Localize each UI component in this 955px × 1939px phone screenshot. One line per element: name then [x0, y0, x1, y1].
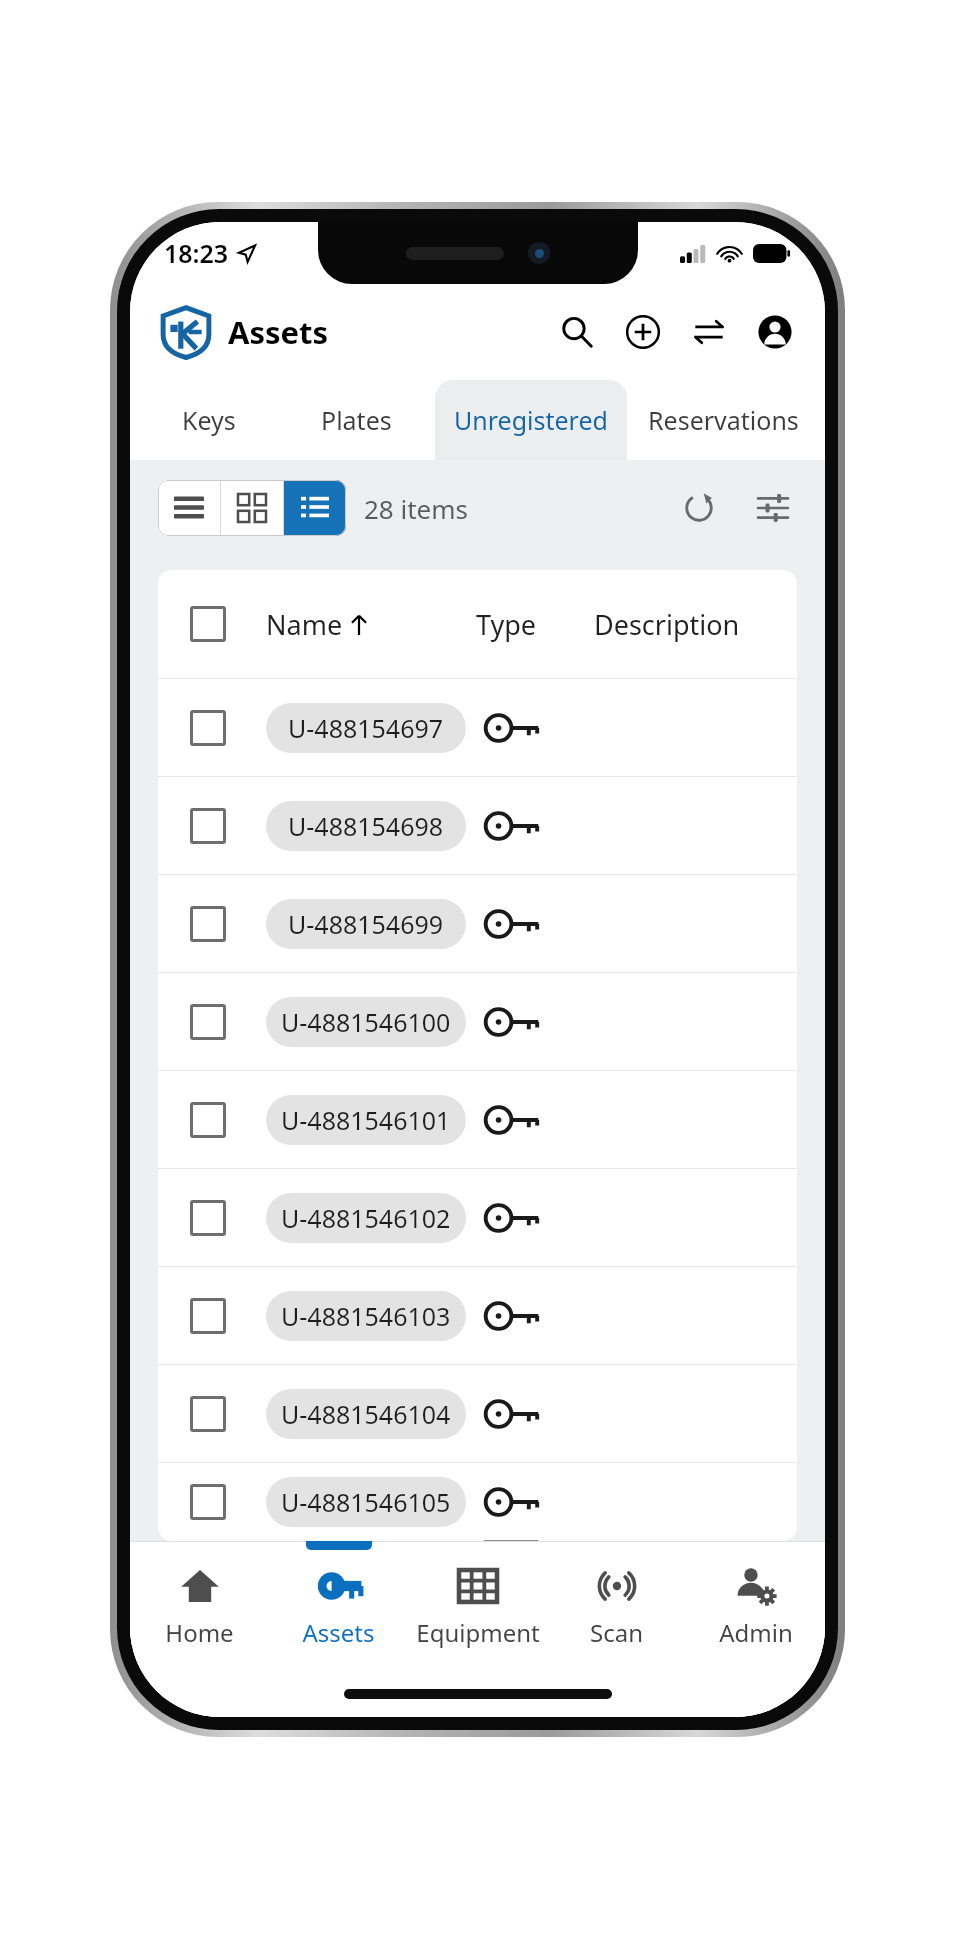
button[interactable]: Select — [188, 679, 797, 776]
staticText: Plates — [321, 403, 392, 437]
staticText: Type — [476, 606, 594, 643]
button[interactable]: Select — [188, 806, 228, 846]
button[interactable]: Select — [188, 1394, 228, 1434]
button[interactable]: Add — [623, 312, 663, 352]
button[interactable]: Transfer — [689, 312, 729, 352]
staticText: Unregistered — [454, 403, 608, 437]
button[interactable]: Select — [188, 875, 797, 972]
button[interactable]: Select — [188, 904, 228, 944]
staticText: U-488154698 — [288, 809, 444, 843]
button[interactable]: List view — [158, 480, 220, 536]
staticText: Reservations — [648, 403, 799, 437]
button[interactable]: Plates — [277, 380, 435, 460]
button[interactable]: Filter settings — [749, 484, 797, 532]
staticText: U-4881546103 — [281, 1299, 451, 1333]
button[interactable]: Select — [188, 1267, 797, 1364]
button[interactable]: Select — [188, 604, 228, 644]
staticText: U-4881546104 — [281, 1397, 451, 1431]
staticText: Scan — [590, 1616, 643, 1649]
button[interactable]: Grid view — [221, 480, 283, 536]
button[interactable]: Select — [188, 1198, 228, 1238]
button[interactable]: Home — [130, 1541, 269, 1671]
staticText: Keys — [182, 403, 236, 437]
staticText: 28 items — [364, 491, 469, 526]
button[interactable]: Refresh — [675, 484, 723, 532]
button[interactable]: Select — [188, 1296, 228, 1336]
button[interactable]: Select — [188, 1365, 797, 1462]
button[interactable]: Select — [188, 1463, 797, 1541]
button[interactable]: Select — [188, 1482, 228, 1522]
staticText: U-4881546102 — [281, 1201, 451, 1235]
staticText: Name — [266, 606, 343, 643]
button[interactable]: Unregistered — [435, 380, 627, 460]
button[interactable]: Admin — [686, 1541, 825, 1671]
button[interactable]: Assets — [269, 1541, 408, 1671]
button[interactable]: Select — [188, 777, 797, 874]
button[interactable]: Equipment — [408, 1541, 547, 1671]
button[interactable]: Select — [188, 1169, 797, 1266]
staticText: U-4881546101 — [281, 1103, 451, 1137]
staticText: U-4881546100 — [281, 1005, 451, 1039]
staticText: U-488154699 — [288, 907, 444, 941]
button[interactable]: Select — [188, 708, 228, 748]
button[interactable]: Select — [188, 1100, 228, 1140]
button[interactable]: Account — [755, 312, 795, 352]
staticText: 18:23 — [164, 236, 229, 270]
staticText: Assets — [228, 311, 329, 353]
staticText: U-488154697 — [288, 711, 444, 745]
button[interactable]: Select — [188, 1071, 797, 1168]
staticText: U-4881546105 — [281, 1485, 451, 1519]
button[interactable]: Table view — [284, 480, 346, 536]
staticText: Admin — [719, 1616, 793, 1649]
button[interactable]: Scan — [547, 1541, 686, 1671]
button[interactable]: Keys — [140, 380, 277, 460]
button[interactable]: Search — [557, 312, 597, 352]
button[interactable]: Select — [188, 1002, 228, 1042]
button[interactable]: Select — [188, 973, 797, 1070]
button[interactable]: Reservations — [627, 380, 819, 460]
staticText: Assets — [302, 1616, 375, 1649]
staticText: Home — [165, 1616, 234, 1649]
staticText: Equipment — [416, 1616, 540, 1649]
staticText: Description — [594, 606, 740, 643]
